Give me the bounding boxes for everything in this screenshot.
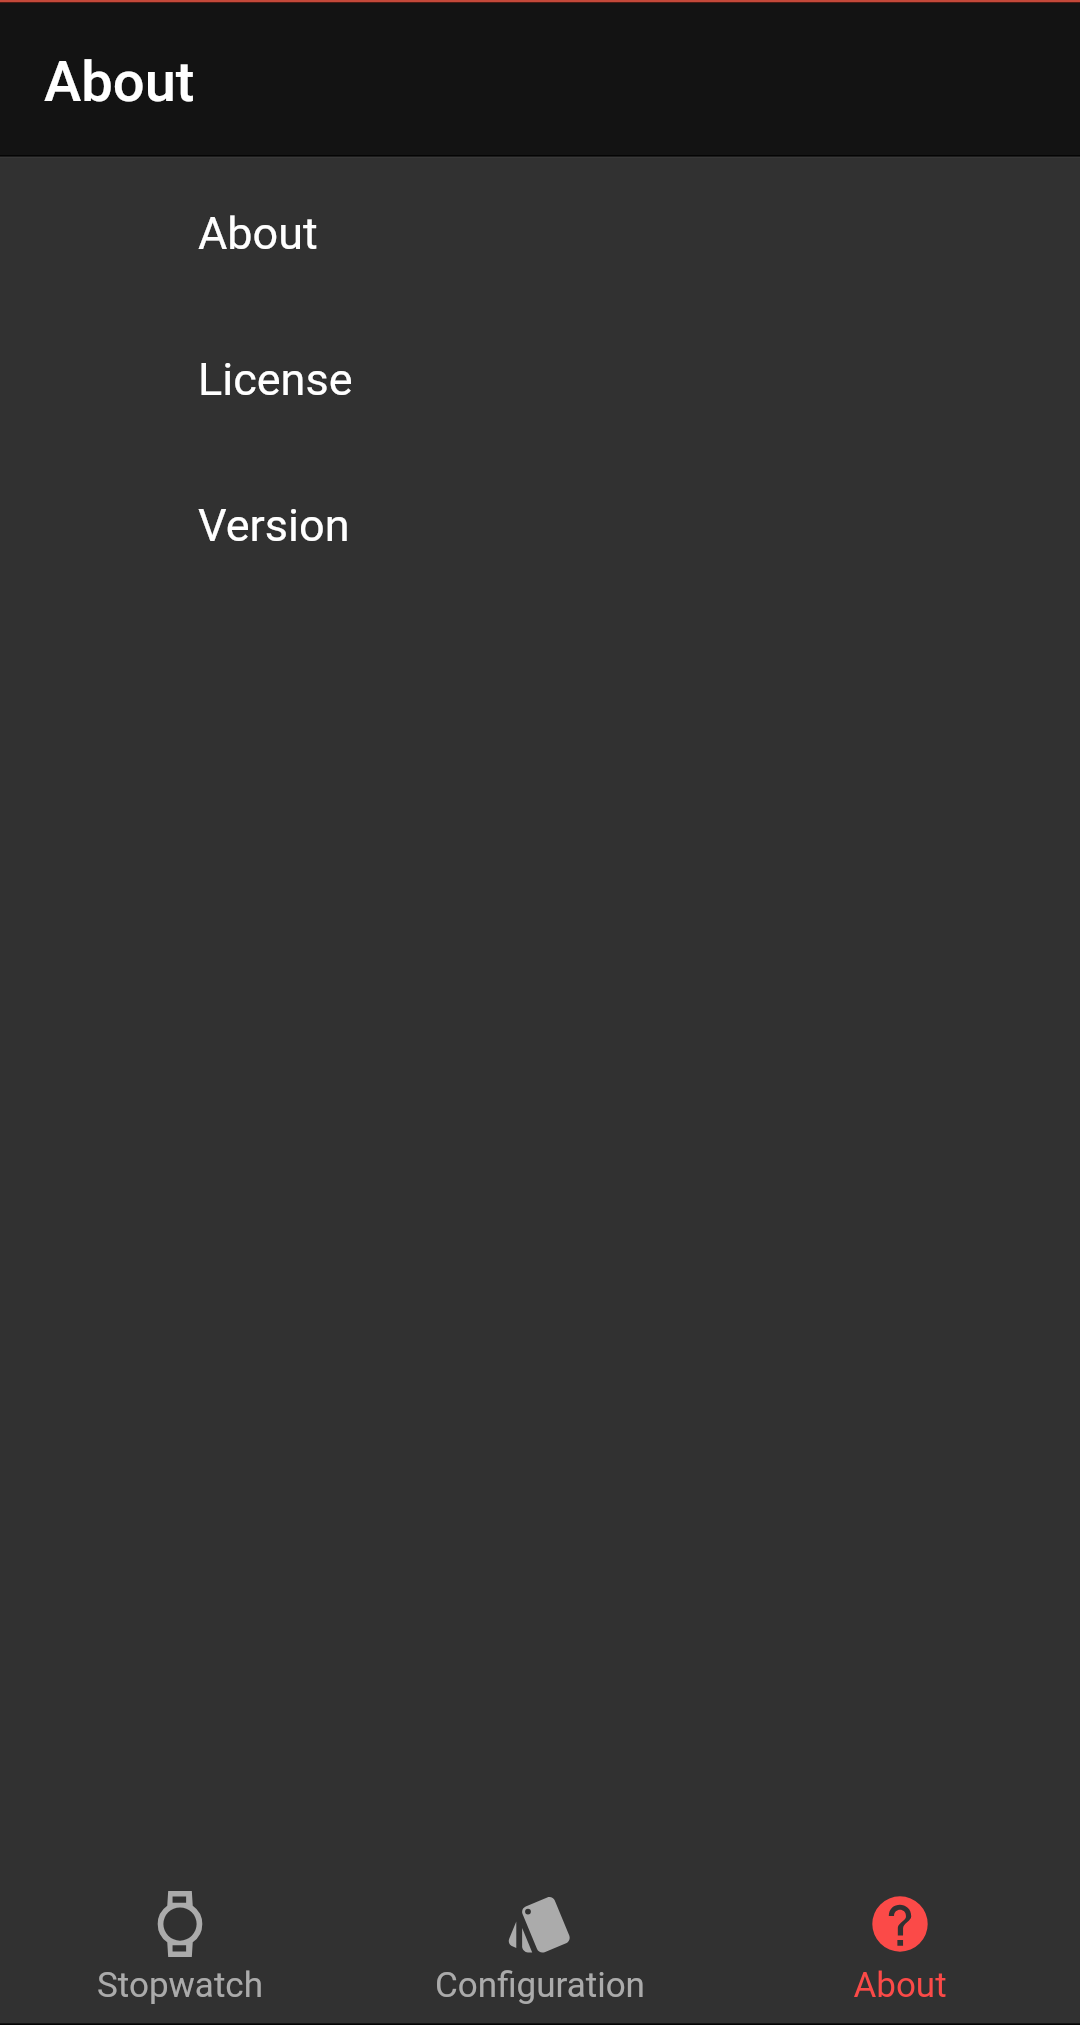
button[interactable]: License bbox=[0, 306, 1080, 452]
other: Stopwatch bbox=[145, 1889, 215, 1959]
staticText: Stopwatch bbox=[97, 1965, 263, 2006]
other: About bbox=[865, 1889, 935, 1959]
button[interactable]: About bbox=[720, 1853, 1080, 2023]
button[interactable]: About bbox=[0, 160, 1080, 306]
staticText: About bbox=[44, 49, 195, 115]
staticText: Configuration bbox=[435, 1965, 645, 2006]
staticText: About bbox=[198, 207, 318, 260]
staticText: About bbox=[853, 1965, 947, 2006]
staticText: License bbox=[198, 353, 353, 406]
button[interactable]: Stopwatch bbox=[0, 1853, 360, 2023]
other: Configuration bbox=[505, 1889, 575, 1959]
button[interactable]: Configuration bbox=[360, 1853, 720, 2023]
button[interactable]: Version bbox=[0, 452, 1080, 598]
staticText: Version bbox=[198, 499, 350, 552]
